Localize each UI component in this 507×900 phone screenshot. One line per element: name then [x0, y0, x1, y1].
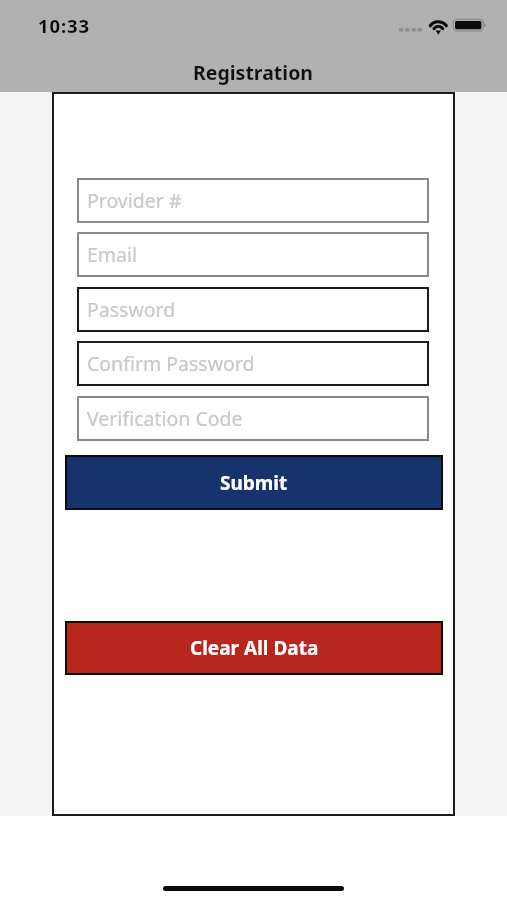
button[interactable]: Password — [77, 287, 429, 332]
button[interactable]: Clear All Data — [65, 621, 443, 675]
button[interactable]: Verification Code — [77, 396, 429, 441]
staticText: Provider # — [87, 187, 182, 214]
staticText: Password — [87, 296, 176, 323]
staticText: Confirm Password — [87, 350, 255, 377]
button[interactable]: Email — [77, 232, 429, 277]
staticText: Submit — [220, 470, 288, 496]
staticText: Email — [87, 241, 138, 268]
button[interactable]: Submit — [65, 455, 443, 510]
button[interactable]: Provider # — [77, 178, 429, 223]
staticText: Clear All Data — [190, 635, 319, 661]
staticText: Verification Code — [87, 405, 243, 432]
button[interactable]: Confirm Password — [77, 341, 429, 386]
other: Signal, Wi-Fi and battery status — [399, 18, 488, 34]
staticText: Registration — [193, 59, 314, 86]
staticText: 10:33 — [38, 13, 91, 38]
